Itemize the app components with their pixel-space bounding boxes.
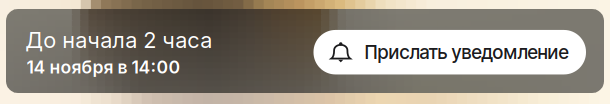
staticText: 14 ноября в 14:00: [27, 56, 181, 78]
staticText: Прислать уведомление: [364, 41, 568, 64]
staticText: До начала 2 часа: [25, 27, 212, 53]
button[interactable]: Прислать уведомление: [313, 30, 586, 74]
